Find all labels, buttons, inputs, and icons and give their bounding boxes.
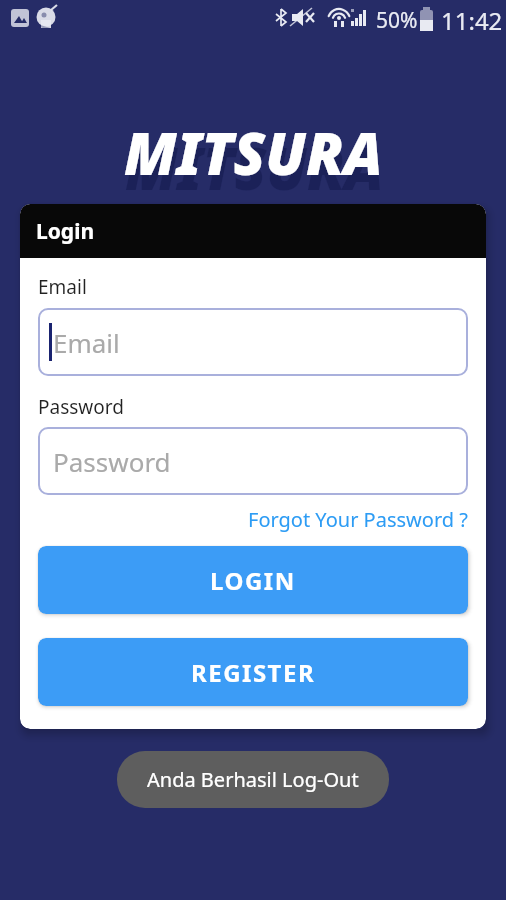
button[interactable]: LOGIN [38,546,468,614]
button[interactable]: Email [38,308,468,376]
button[interactable]: Password [38,427,468,495]
staticText: Anda Berhasil Log-Out [147,766,359,793]
staticText: MITSURA [124,113,383,192]
staticText: Login [36,217,95,246]
staticText: LOGIN [210,564,296,597]
button[interactable]: Anda Berhasil Log-Out [117,751,389,808]
staticText: Password [53,444,171,479]
button[interactable]: REGISTER [38,638,468,706]
button[interactable]: Forgot Your Password ? [248,506,468,533]
staticText: Password [38,394,124,420]
staticText: MITSURA [125,128,384,207]
staticText: Email [53,325,120,360]
staticText: 11:42 [441,4,503,37]
staticText: Email [38,274,87,300]
staticText: REGISTER [191,656,316,689]
staticText: 50% [376,6,418,35]
